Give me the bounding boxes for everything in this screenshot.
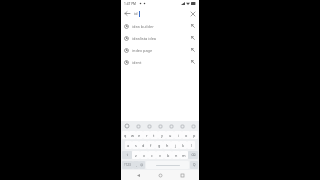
button[interactable]: Back — [123, 9, 132, 18]
button[interactable]: y — [158, 131, 166, 139]
staticText: g — [158, 143, 161, 148]
staticText: v — [159, 153, 161, 158]
button[interactable]: Symbols — [122, 161, 133, 169]
staticText: k — [182, 143, 185, 148]
staticText: y — [161, 133, 163, 138]
button[interactable]: m — [180, 151, 188, 159]
button[interactable]: Keyboard tool 1 — [135, 123, 141, 129]
button[interactable]: b — [164, 151, 172, 159]
staticText: idealista idea — [132, 36, 190, 41]
button[interactable]: Insert suggestion — [190, 59, 196, 65]
button[interactable]: g — [155, 141, 163, 149]
button[interactable]: p — [190, 131, 198, 139]
staticText: idea builder — [132, 24, 190, 29]
button[interactable]: n — [172, 151, 180, 159]
staticText: ident — [132, 60, 190, 65]
button[interactable]: Keyboard tool 3 — [157, 123, 163, 129]
staticText: p — [193, 133, 196, 138]
button[interactable]: index page — [121, 44, 199, 56]
staticText: x — [143, 153, 146, 158]
button[interactable]: Clear search — [188, 9, 197, 18]
staticText: , — [136, 163, 137, 167]
button[interactable]: Home — [155, 170, 165, 180]
button[interactable]: o — [182, 131, 190, 139]
staticText: r — [146, 133, 148, 138]
staticText: m — [182, 153, 186, 158]
button[interactable]: t — [150, 131, 158, 139]
button[interactable]: Keyboard tool 5 — [179, 123, 185, 129]
button[interactable]: h — [163, 141, 171, 149]
staticText: e — [138, 133, 141, 138]
staticText: id — [134, 11, 138, 17]
button[interactable]: Recent apps — [177, 170, 187, 180]
button[interactable]: Insert suggestion — [190, 47, 196, 53]
staticText: s — [135, 143, 137, 148]
staticText: b — [167, 153, 170, 158]
button[interactable]: Insert suggestion — [190, 23, 196, 29]
button[interactable]: Keyboard tool 4 — [168, 123, 174, 129]
staticText: o — [185, 133, 188, 138]
button[interactable]: Backspace — [188, 151, 198, 159]
button[interactable]: Insert suggestion — [190, 35, 196, 41]
staticText: i — [178, 133, 179, 138]
staticText: j — [175, 143, 176, 148]
button[interactable]: Space — [146, 161, 189, 169]
button[interactable]: d — [139, 141, 147, 149]
button[interactable]: q — [122, 131, 129, 139]
button[interactable]: Keyboard tool 6 — [190, 123, 196, 129]
staticText: ⇧ — [126, 153, 129, 157]
button[interactable]: j — [171, 141, 179, 149]
staticText: ?123 — [124, 163, 131, 167]
button[interactable]: i — [174, 131, 182, 139]
button[interactable]: idea builder — [121, 20, 199, 32]
staticText: a — [127, 143, 130, 148]
staticText: z — [135, 153, 137, 158]
button[interactable]: Back — [133, 170, 143, 180]
button[interactable]: f — [147, 141, 155, 149]
staticText: t — [153, 133, 155, 138]
staticText: w — [131, 133, 134, 138]
staticText: c — [151, 153, 153, 158]
button[interactable]: e — [136, 131, 143, 139]
button[interactable]: Google — [124, 123, 130, 129]
button[interactable]: w — [129, 131, 136, 139]
staticText: index page — [132, 48, 190, 53]
button[interactable]: v — [156, 151, 164, 159]
button[interactable]: z — [132, 151, 140, 159]
staticText: ⌫ — [191, 153, 196, 157]
staticText: d — [142, 143, 145, 148]
button[interactable]: ident — [121, 56, 199, 68]
button[interactable]: Comma — [133, 161, 139, 169]
staticText: 1:47 PM — [124, 2, 137, 6]
button[interactable]: c — [148, 151, 156, 159]
button[interactable]: id — [134, 7, 188, 20]
staticText: l — [191, 143, 192, 148]
button[interactable]: s — [132, 141, 139, 149]
button[interactable]: r — [143, 131, 150, 139]
button[interactable]: idealista idea — [121, 32, 199, 44]
button[interactable]: u — [166, 131, 174, 139]
button[interactable]: Emoji — [139, 161, 145, 169]
staticText: Q — [193, 163, 196, 167]
staticText: h — [166, 143, 169, 148]
button[interactable]: Shift — [122, 151, 132, 159]
button[interactable]: Search — [190, 161, 198, 169]
staticText: f — [150, 143, 152, 148]
button[interactable]: k — [179, 141, 187, 149]
staticText: q — [124, 133, 127, 138]
staticText: u — [169, 133, 172, 138]
button[interactable]: x — [140, 151, 148, 159]
button[interactable]: a — [125, 141, 132, 149]
button[interactable]: Keyboard tool 2 — [146, 123, 152, 129]
button[interactable]: l — [187, 141, 195, 149]
staticText: 😊 — [140, 163, 144, 167]
staticText: n — [175, 153, 178, 158]
